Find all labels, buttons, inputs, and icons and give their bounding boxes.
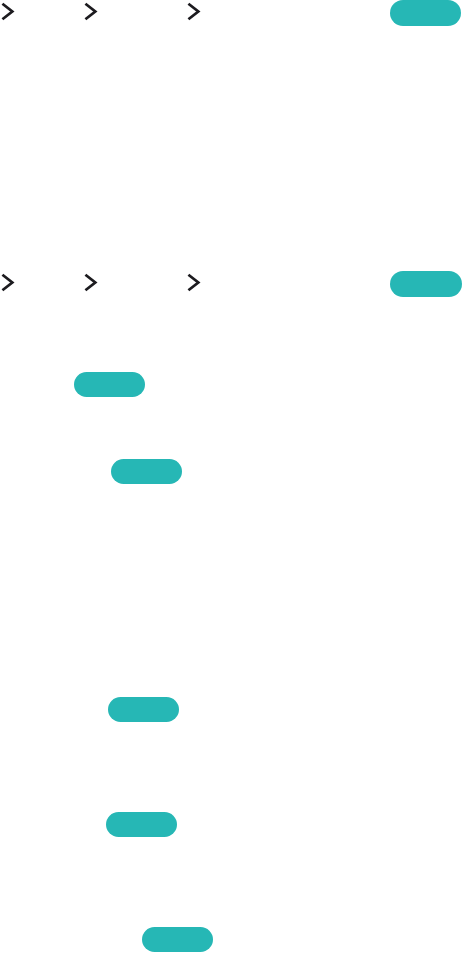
button[interactable]: Continue [108,697,179,722]
button[interactable]: Library [84,2,97,21]
button[interactable]: Follow [390,0,461,26]
button[interactable]: Home [1,2,14,21]
button[interactable]: Continue [111,459,182,484]
button[interactable]: Collection [187,2,200,21]
button[interactable]: Playlists [84,273,97,292]
button[interactable]: Follow [390,271,462,297]
button[interactable]: Continue [142,927,213,952]
button[interactable]: Continue [74,372,145,397]
button[interactable]: Home [1,273,14,292]
button[interactable]: Recently added [187,273,200,292]
button[interactable]: Continue [106,812,177,837]
